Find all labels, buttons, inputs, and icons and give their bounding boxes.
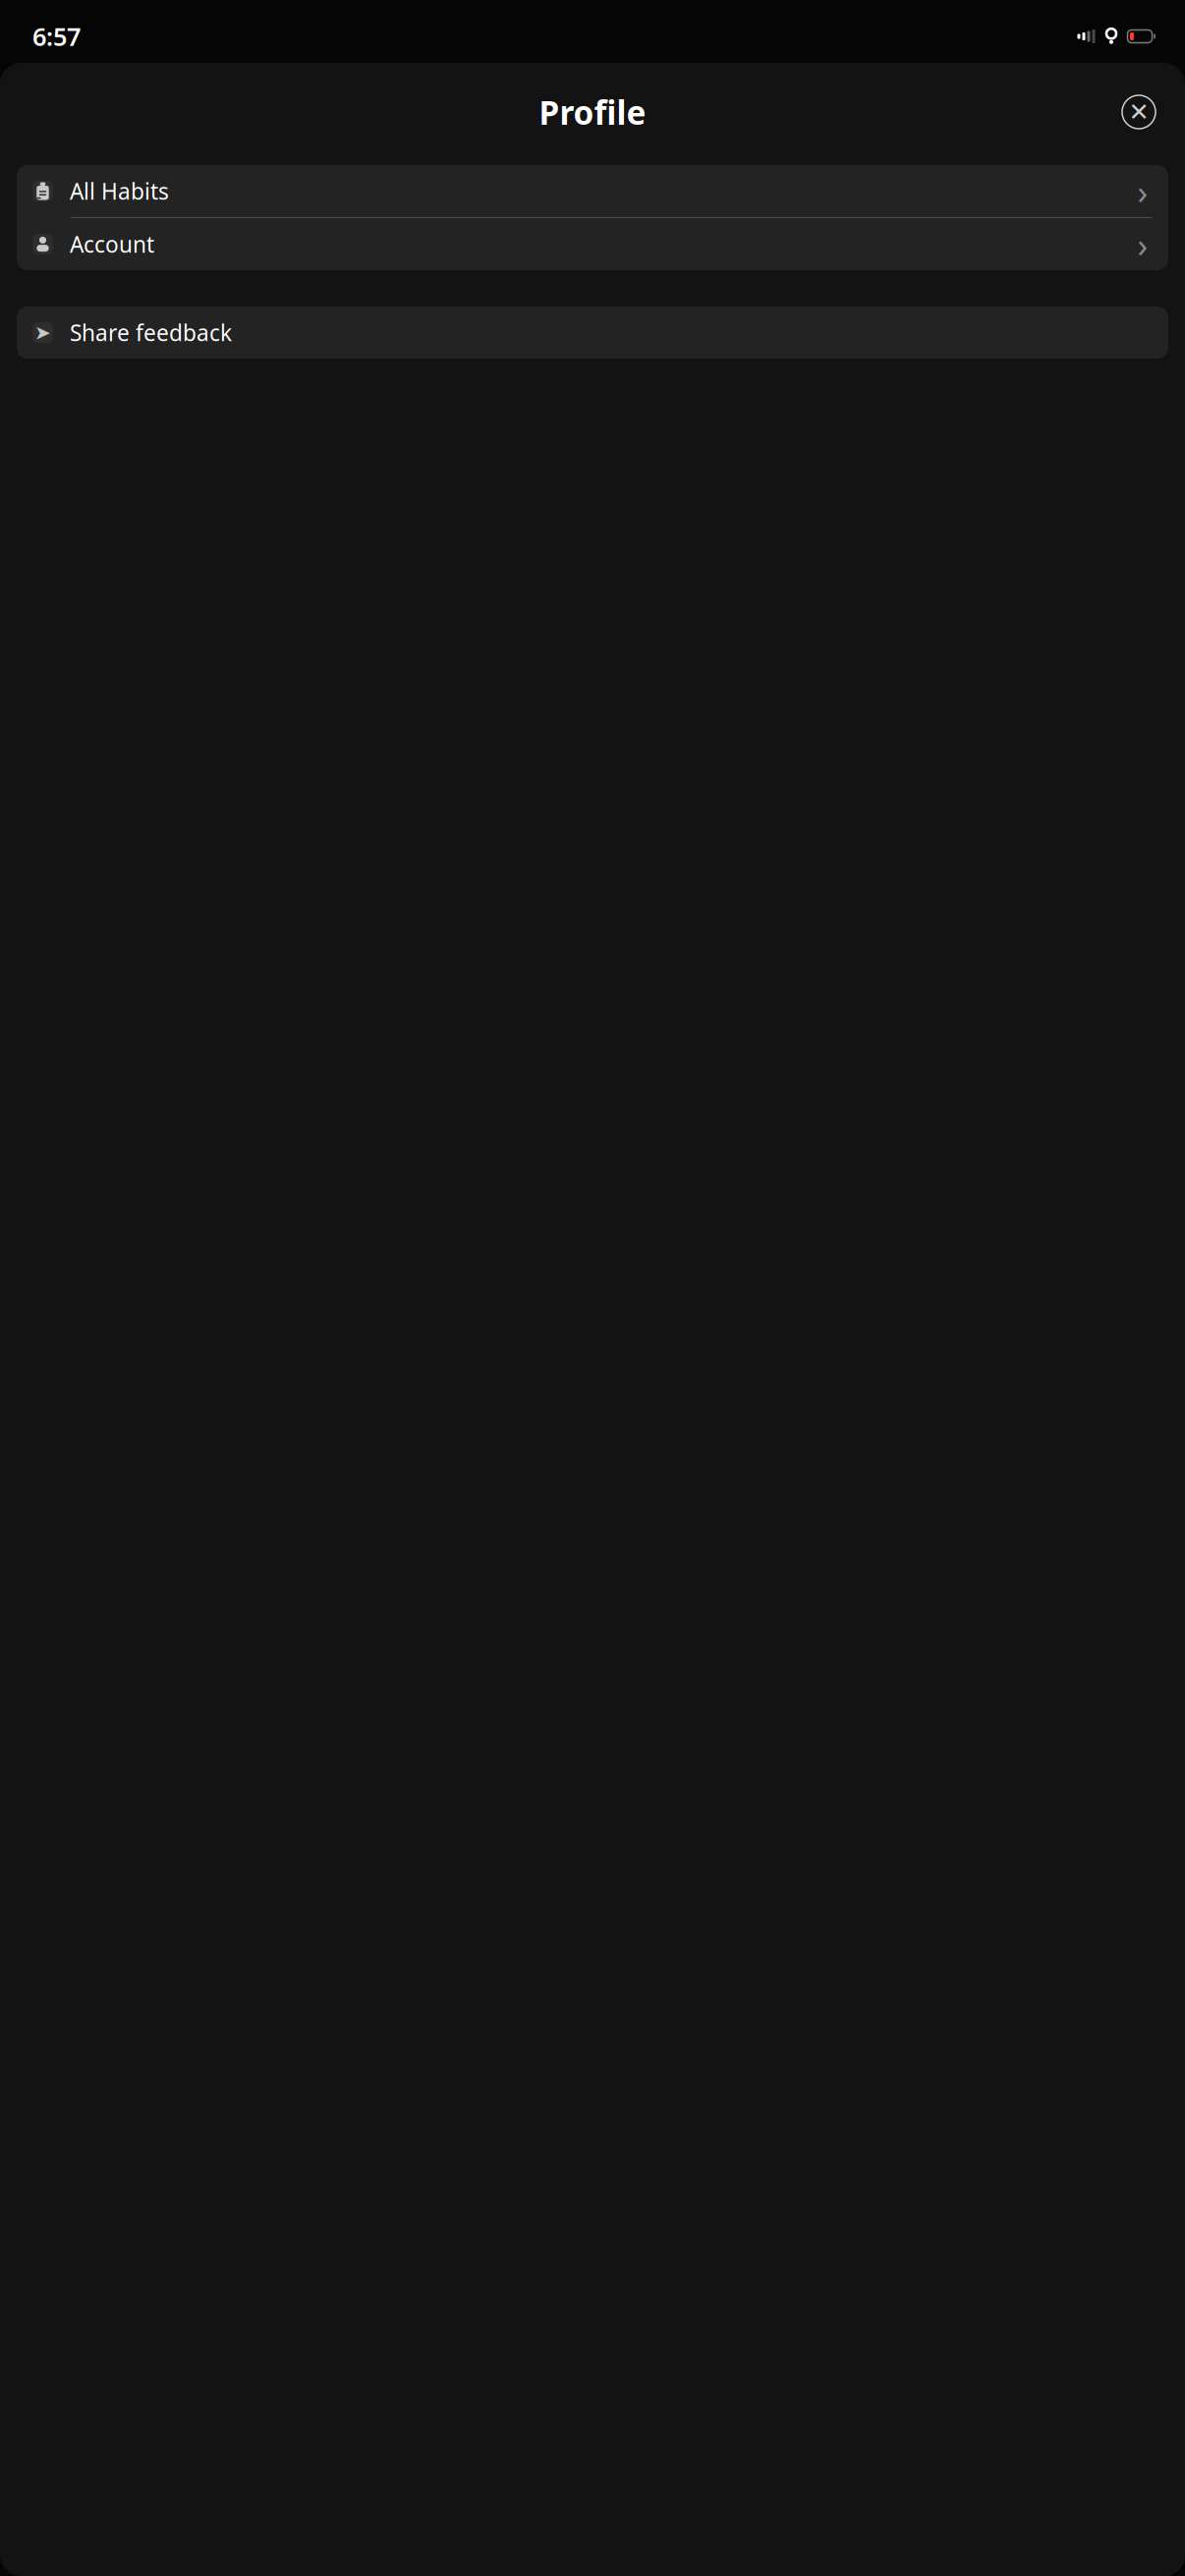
button[interactable]: ➤ [17,307,1168,359]
staticText: All Habits [70,176,169,206]
staticText: › [1137,168,1148,214]
staticText: ✕ [1129,98,1149,126]
staticText: 6:57 [32,20,81,53]
button[interactable]: Close [1112,85,1165,139]
button[interactable]: All Habits [17,165,1168,217]
staticText: ➤ [34,321,51,344]
staticText: › [1137,222,1148,267]
staticText: Share feedback [70,318,232,347]
staticText: Profile [539,90,646,134]
staticText: Account [70,229,154,259]
button[interactable]: Account [17,218,1168,270]
